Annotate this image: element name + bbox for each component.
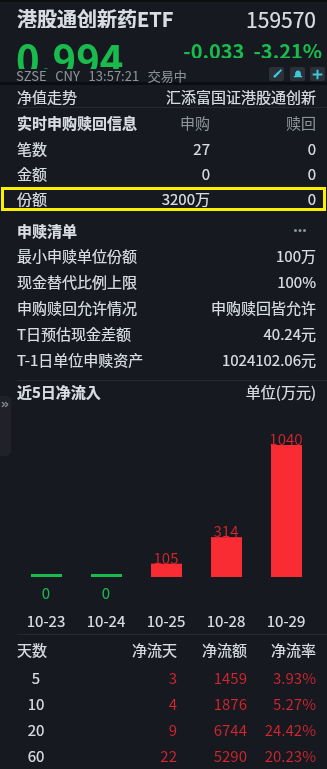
staticText: 净流率 [166, 639, 316, 661]
staticText: 1459 [97, 667, 247, 689]
button[interactable]: T-1日单位申赎资产 [0, 347, 327, 373]
staticText: 0 [166, 188, 316, 210]
staticText: 10-23 [16, 610, 76, 628]
button[interactable]: 现金替代比例上限 [0, 269, 327, 295]
staticText: 港股通创新药ETF [17, 4, 174, 28]
staticText: 金额 [17, 163, 48, 185]
staticText: 6744 [97, 719, 247, 741]
staticText: 0 [166, 138, 316, 160]
staticText: 5 [6, 667, 66, 689]
button[interactable]: 港股通创新药ETF [0, 3, 327, 27]
staticText: 20.23% [166, 745, 316, 767]
staticText: -0.033 -3.21% [172, 36, 322, 58]
staticText: 27 [60, 138, 210, 160]
staticText: 10-28 [196, 610, 256, 628]
staticText: 159570 [166, 4, 316, 28]
button[interactable]: 申购赎回允许情况 [0, 295, 327, 321]
staticText: 1876 [97, 693, 247, 715]
staticText: 1040 [256, 428, 316, 446]
other: More options [294, 222, 306, 238]
staticText: 5.27% [166, 693, 316, 715]
staticText: 净值走势 [17, 86, 78, 107]
staticText: 24.42% [166, 719, 316, 741]
staticText: 40.24元 [166, 323, 316, 345]
staticText: 0 [76, 582, 136, 600]
staticText: 20 [6, 719, 66, 741]
staticText: 3 [27, 667, 177, 689]
staticText: 10-29 [256, 610, 316, 628]
staticText: 5290 [97, 745, 247, 767]
staticText: 申赎清单 [17, 220, 78, 242]
staticText: 汇添富国证港股通创新药ETF [166, 86, 316, 107]
staticText: SZSE CNY 13:57:21 交易中 [16, 66, 187, 84]
button[interactable]: Edit [269, 67, 284, 81]
staticText: 申购 [60, 112, 210, 134]
staticText: T-1日单位申赎资产 [17, 349, 144, 371]
staticText: 0 [60, 163, 210, 185]
button[interactable]: T日预估现金差额 [0, 321, 327, 347]
button[interactable]: 实时申购赎回信息 [0, 110, 327, 136]
button[interactable]: 10 [0, 691, 327, 717]
button[interactable]: 最小申赎单位份额 [0, 243, 327, 269]
button[interactable]: 申赎清单 [0, 218, 327, 243]
staticText: 申购赎回允许情况 [17, 297, 138, 319]
staticText: 10-25 [136, 610, 196, 628]
staticText: 申购赎回皆允许 [166, 297, 316, 319]
button[interactable]: 份额 [0, 186, 327, 212]
staticText: 100万 [166, 245, 316, 267]
button[interactable]: 近5日净流入 [0, 381, 327, 403]
staticText: 实时申购赎回信息 [17, 112, 138, 134]
staticText: 0.994 [16, 29, 124, 69]
staticText: 314 [196, 520, 256, 538]
staticText: 10-24 [76, 610, 136, 628]
staticText: T日预估现金差额 [17, 323, 131, 345]
staticText: 10 [6, 693, 66, 715]
staticText: 3200万 [60, 188, 210, 210]
staticText: 100% [166, 271, 316, 293]
staticText: 9 [27, 719, 177, 741]
staticText: 105 [136, 547, 196, 565]
staticText: 0 [166, 163, 316, 185]
staticText: 22 [27, 745, 177, 767]
button[interactable]: Price alert [290, 67, 305, 81]
button[interactable]: Add to watchlist [310, 67, 325, 81]
staticText: 净流天 [27, 639, 177, 661]
staticText: 60 [6, 745, 66, 767]
staticText: 1024102.06元 [166, 349, 316, 371]
staticText: 3.93% [166, 667, 316, 689]
staticText: 赎回 [166, 112, 316, 134]
staticText: 最小申赎单位份额 [17, 245, 138, 267]
staticText: 天数 [17, 639, 48, 661]
staticText: 0 [16, 582, 76, 600]
staticText: 近5日净流入 [17, 381, 101, 403]
staticText: 份额 [17, 188, 48, 210]
staticText: 净流额 [97, 639, 247, 661]
staticText: 单位(万元) [166, 381, 316, 403]
button[interactable]: 金额 [0, 161, 327, 187]
button[interactable]: 60 [0, 743, 327, 769]
button[interactable]: Expand side panel [0, 396, 11, 456]
staticText: 4 [27, 693, 177, 715]
staticText: 笔数 [17, 138, 48, 160]
button[interactable]: 笔数 [0, 136, 327, 162]
button[interactable]: 净值走势 [0, 86, 327, 107]
staticText: 现金替代比例上限 [17, 271, 138, 293]
button[interactable]: 5 [0, 665, 327, 691]
button[interactable]: 20 [0, 717, 327, 743]
